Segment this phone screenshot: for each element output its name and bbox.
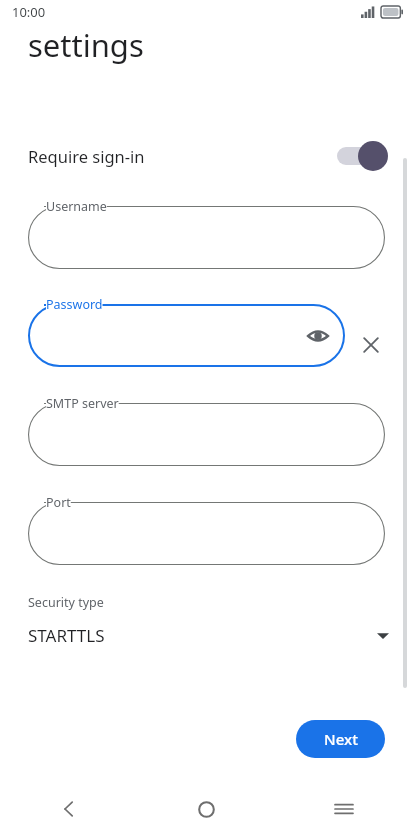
button[interactable]: Port: [28, 502, 385, 565]
staticText: Require sign-in: [28, 145, 145, 167]
staticText: settings: [28, 24, 144, 66]
button[interactable]: SMTP server: [28, 403, 385, 466]
button[interactable]: Require sign-in toggle: [337, 141, 389, 171]
button[interactable]: Home: [137, 783, 275, 835]
button[interactable]: Security type: [0, 588, 413, 658]
staticText: Password: [46, 296, 103, 313]
staticText: Next: [324, 729, 358, 749]
button[interactable]: Username: [28, 206, 385, 269]
button[interactable]: Require sign-in: [0, 133, 413, 179]
staticText: Outgoing server: [28, 0, 266, 24]
button[interactable]: Recent apps: [275, 783, 413, 835]
button[interactable]: Back: [0, 783, 137, 835]
button[interactable]: Next: [296, 720, 385, 758]
button[interactable]: Password: [28, 304, 345, 367]
staticText: 10:00: [12, 3, 46, 21]
staticText: Username: [46, 198, 107, 215]
staticText: SMTP server: [46, 395, 119, 412]
staticText: Port: [46, 494, 71, 511]
button[interactable]: Clear password: [357, 331, 385, 359]
staticText: Security type: [28, 594, 104, 611]
button[interactable]: Show password: [304, 322, 332, 350]
staticText: STARTTLS: [28, 624, 105, 647]
